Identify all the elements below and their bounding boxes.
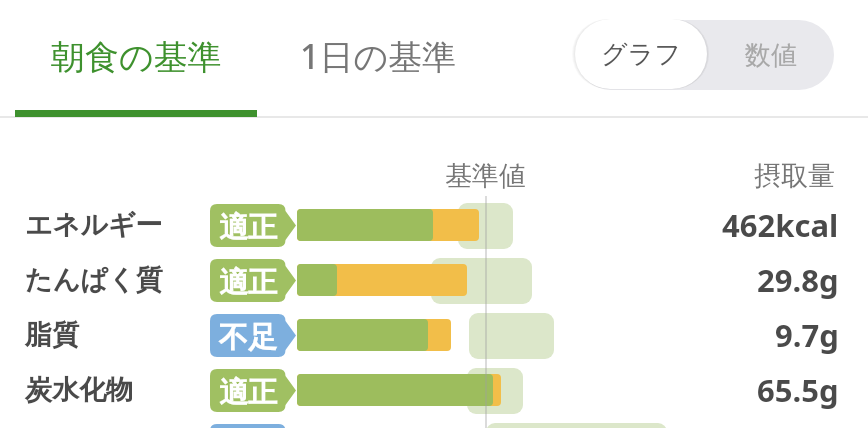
button[interactable]: 29.8g — [620, 258, 839, 302]
staticText: 不足 — [219, 319, 277, 356]
button[interactable]: 65.5g — [620, 368, 839, 412]
staticText: 適正 — [219, 374, 277, 411]
button[interactable]: グラフ — [575, 19, 707, 89]
staticText: 適正 — [219, 209, 277, 246]
staticText: 朝食の基準 — [51, 36, 222, 79]
staticText: 炭水化物 — [25, 373, 133, 407]
button[interactable]: 炭水化物 — [25, 368, 195, 412]
staticText: 数値 — [745, 39, 797, 72]
button[interactable]: 脂質 — [25, 313, 195, 357]
button[interactable]: 不足 — [210, 424, 296, 428]
staticText: エネルギー — [25, 208, 163, 242]
button[interactable]: 1日の基準 — [273, 0, 483, 116]
button[interactable]: 不足 — [210, 314, 296, 357]
staticText: 適正 — [219, 264, 277, 301]
staticText: 脂質 — [25, 318, 79, 352]
staticText: 462kcal — [722, 204, 839, 246]
button[interactable]: エネルギー — [25, 203, 195, 247]
staticText: 摂取量 — [754, 159, 835, 193]
staticText: 基準値 — [445, 159, 526, 193]
button[interactable]: 適正 — [210, 369, 296, 412]
staticText: 29.8g — [757, 259, 839, 301]
button[interactable]: 適正 — [210, 204, 296, 247]
button[interactable]: 数値 — [707, 20, 834, 90]
button[interactable]: 適正 — [210, 259, 296, 302]
staticText: 65.5g — [757, 369, 839, 411]
staticText: グラフ — [601, 38, 681, 71]
button[interactable]: たんぱく質 — [25, 258, 195, 302]
staticText: 9.7g — [775, 314, 839, 356]
staticText: 1日の基準 — [300, 33, 457, 79]
button[interactable]: 朝食の基準 — [0, 0, 273, 116]
staticText: たんぱく質 — [25, 263, 163, 297]
button[interactable]: 9.7g — [620, 313, 839, 357]
button[interactable]: 462kcal — [620, 203, 839, 247]
